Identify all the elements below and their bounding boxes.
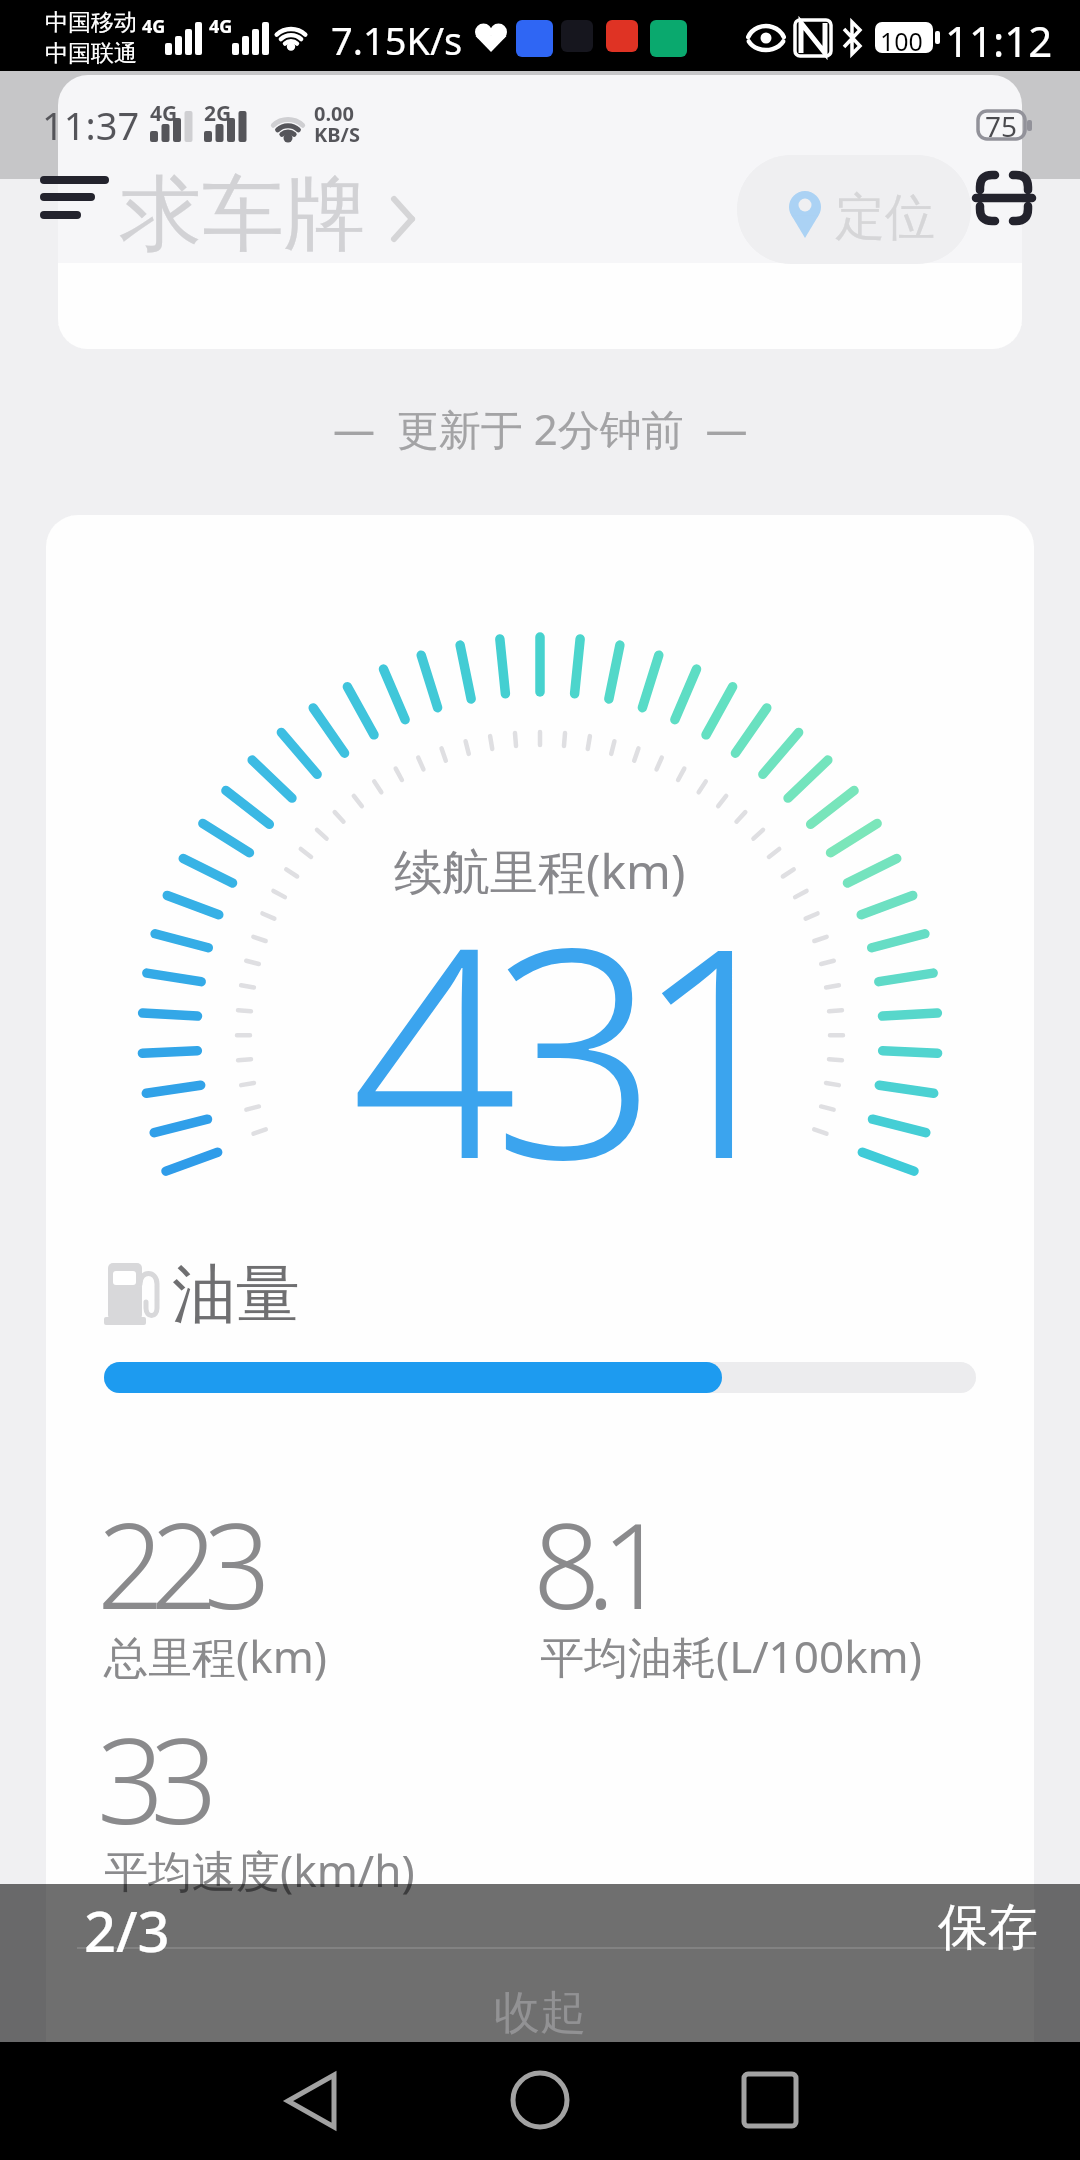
staticText: 11:37 xyxy=(42,99,140,151)
staticText: 223 xyxy=(97,1483,258,1644)
staticText: 中国联通 xyxy=(45,39,137,68)
button[interactable] xyxy=(38,170,114,226)
staticText: 4G xyxy=(209,14,233,39)
staticText: 431 xyxy=(351,848,776,1243)
button[interactable]: 保存 xyxy=(928,1896,1048,1956)
staticText: 保存 xyxy=(938,1896,1038,1956)
staticText: 100 xyxy=(880,24,923,58)
button[interactable] xyxy=(270,2067,350,2135)
staticText: 75 xyxy=(985,107,1018,145)
staticText: 总里程(km) xyxy=(104,1626,328,1686)
staticText: 7.15K/s xyxy=(331,14,463,66)
button[interactable] xyxy=(500,2067,580,2135)
button[interactable]: 收起 xyxy=(480,1984,600,2040)
staticText: 平均油耗(L/100km) xyxy=(540,1626,922,1686)
staticText: 4G xyxy=(150,99,178,128)
staticText: 2/3 xyxy=(84,1892,170,1968)
staticText: 油量 xyxy=(172,1254,300,1335)
staticText: 0.00 xyxy=(314,100,354,127)
staticText: 续航里程(km) xyxy=(394,838,686,904)
button[interactable]: 定位 xyxy=(737,155,971,264)
staticText: 4G xyxy=(142,14,166,39)
staticText: 求车牌 xyxy=(120,163,366,266)
staticText: 平均速度(km/h) xyxy=(104,1840,415,1900)
staticText: KB/S xyxy=(314,121,360,148)
staticText: 收起 xyxy=(494,1984,586,2040)
staticText: 2G xyxy=(204,99,232,128)
staticText: 11:12 xyxy=(945,12,1053,69)
staticText: 中国移动 xyxy=(45,8,137,37)
button[interactable] xyxy=(730,2067,810,2135)
staticText: 定位 xyxy=(835,186,935,249)
button[interactable] xyxy=(972,171,1036,225)
staticText: 33 xyxy=(97,1698,204,1859)
staticText: 8.1 xyxy=(533,1483,655,1644)
staticText: — 更新于 2分钟前 — xyxy=(333,400,748,457)
